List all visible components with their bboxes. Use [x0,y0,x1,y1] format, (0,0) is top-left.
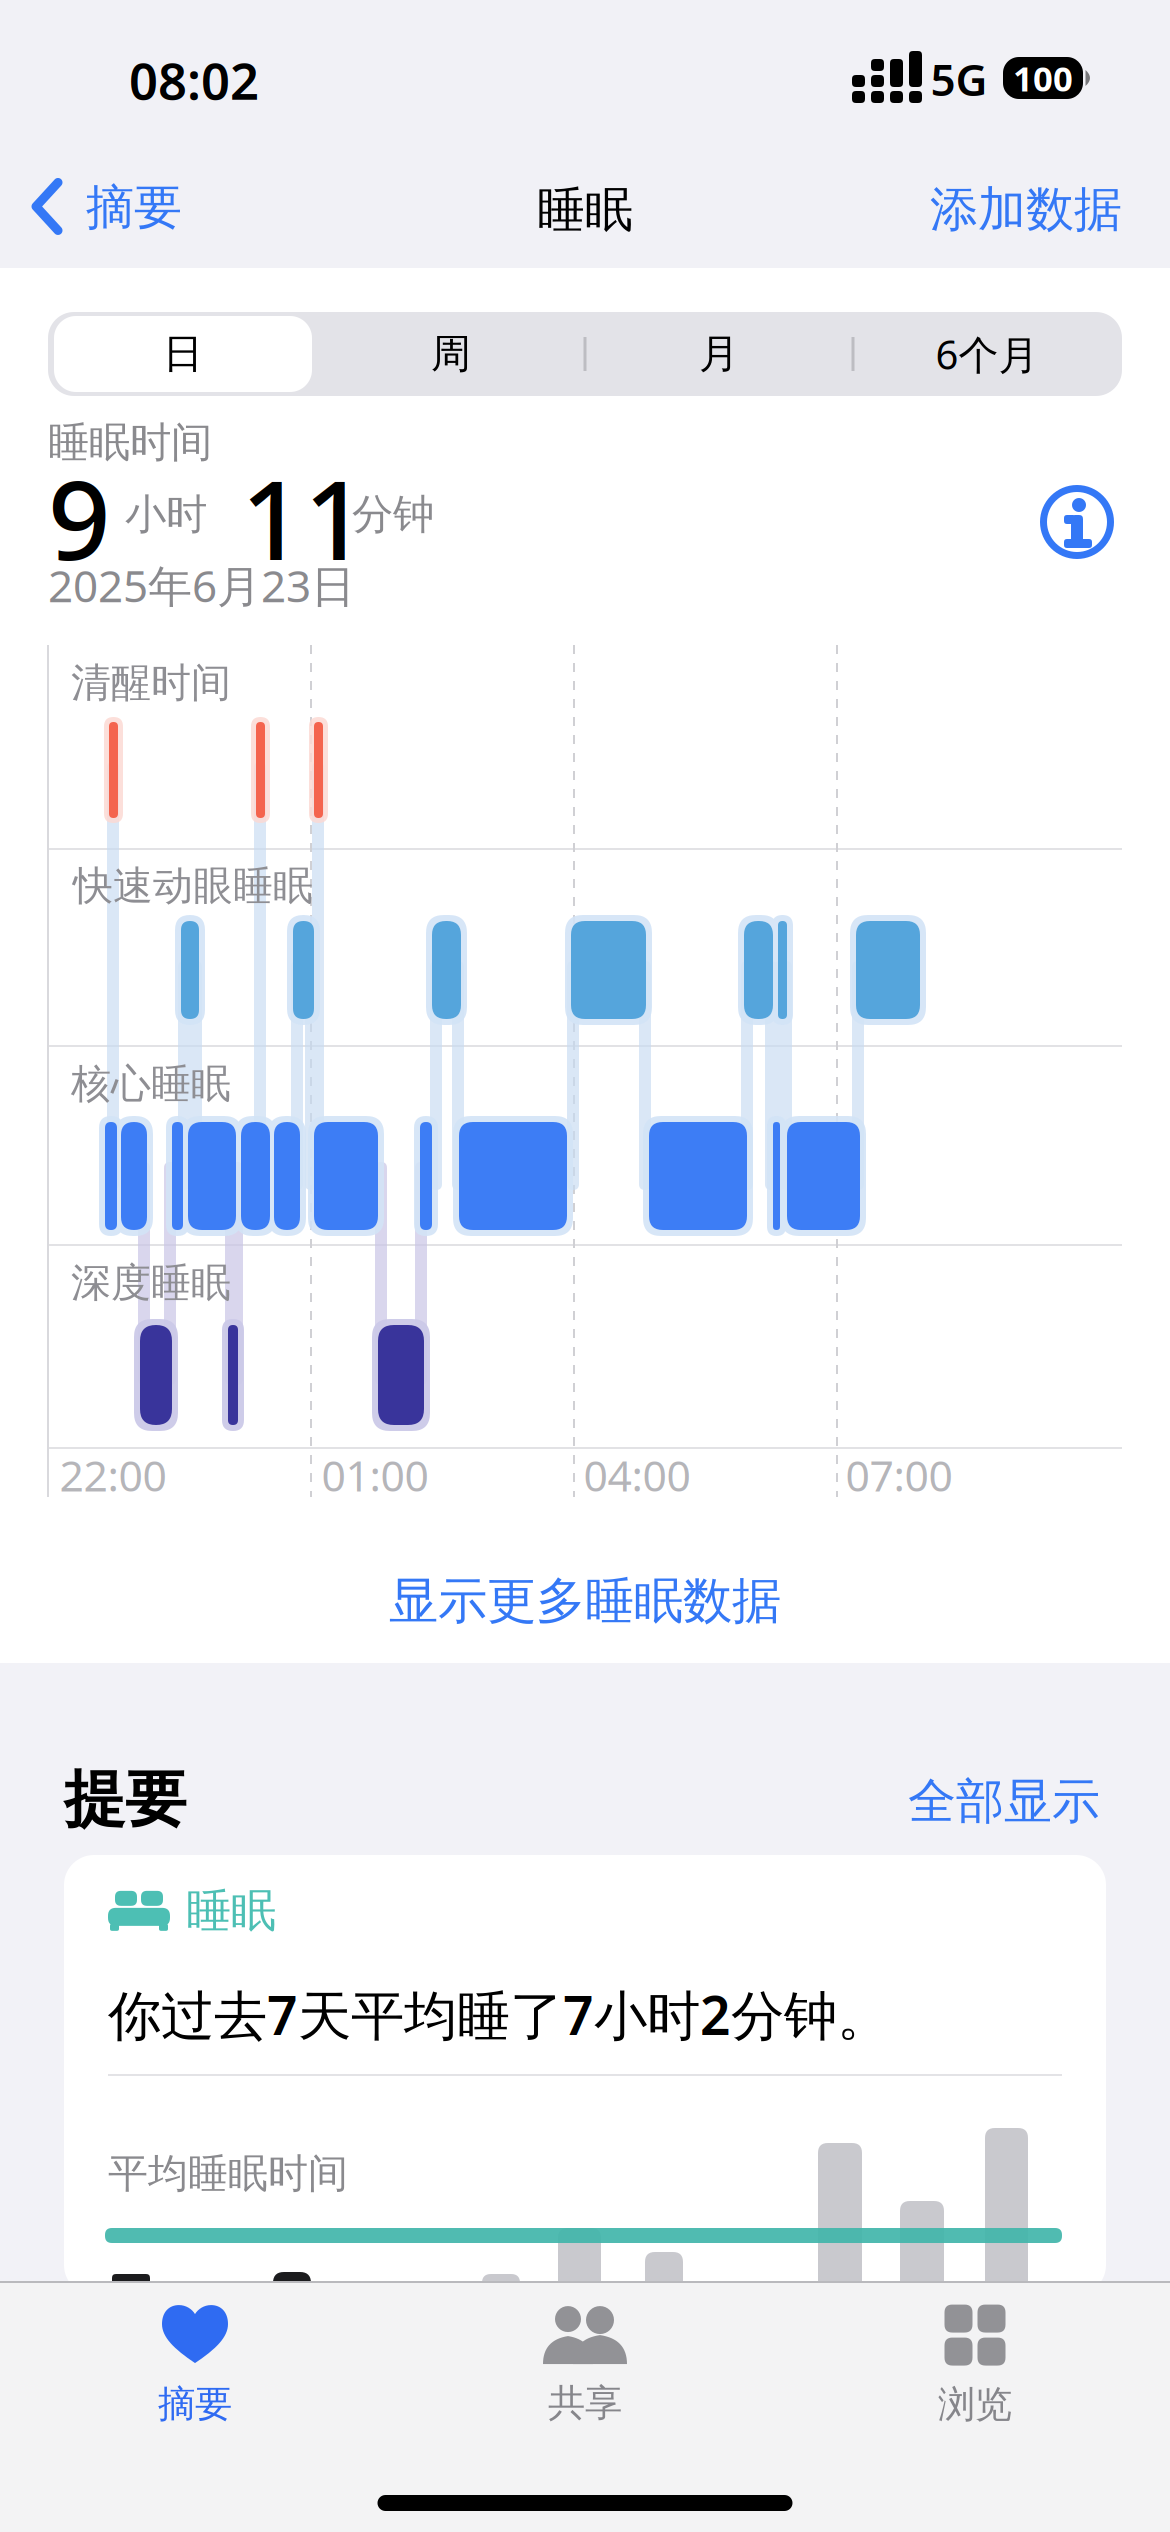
staticText: 核心睡眠 [71,1059,231,1108]
staticText: 睡眠 [537,180,633,239]
staticText: 07:00 [845,1447,952,1503]
staticText: 添加数据 [930,180,1122,239]
staticText: 睡眠 [186,1883,276,1939]
button[interactable]: 周 [321,314,581,394]
staticText: 08:02 [129,46,259,114]
staticText: 清醒时间 [71,658,231,707]
staticText: 摘要 [158,2381,232,2427]
staticText: 22:00 [59,1447,166,1503]
staticText: 你过去7天平均睡了7小时2分钟。 [108,1979,890,2050]
staticText: 显示更多睡眠数据 [389,1571,781,1631]
staticText: 睡眠时间 [48,417,212,468]
staticText: 04:00 [583,1447,690,1503]
staticText: 2025年6月23日 [48,556,355,614]
staticText: 100 [1013,55,1073,101]
staticText: 11 [241,445,367,590]
staticText: 提要 [64,1762,186,1837]
button[interactable]: 全部显示 [908,1772,1100,1831]
staticText: 周 [431,329,471,378]
button[interactable]: 摘要 [32,178,182,237]
staticText: 深度睡眠 [71,1258,231,1307]
staticText: 小时 [125,489,207,540]
button[interactable]: 睡眠 [64,1855,1106,2295]
staticText: 月 [699,329,739,378]
staticText: 全部显示 [908,1772,1100,1831]
staticText: 日 [163,329,203,378]
staticText: 快速动眼睡眠 [73,861,313,910]
button[interactable]: 关于睡眠 [1040,485,1114,559]
button[interactable]: 月 [589,314,849,394]
staticText: 01:00 [321,1447,428,1503]
staticText: 5G [930,50,987,108]
button[interactable]: 浏览 [938,2305,1012,2427]
staticText: 摘要 [86,178,182,237]
staticText: 浏览 [938,2382,1012,2427]
button[interactable]: 6个月 [857,314,1117,394]
button[interactable]: 显示更多睡眠数据 [389,1571,781,1631]
staticText: 6个月 [935,327,1038,380]
button[interactable]: 摘要 [158,2305,232,2427]
button[interactable]: 添加数据 [930,180,1122,239]
button[interactable]: 日 [54,316,312,392]
staticText: 9 [48,445,111,590]
staticText: 平均睡眠时间 [108,2149,348,2198]
staticText: 分钟 [352,489,434,540]
staticText: 共享 [548,2380,622,2426]
button[interactable]: 共享 [543,2306,627,2426]
